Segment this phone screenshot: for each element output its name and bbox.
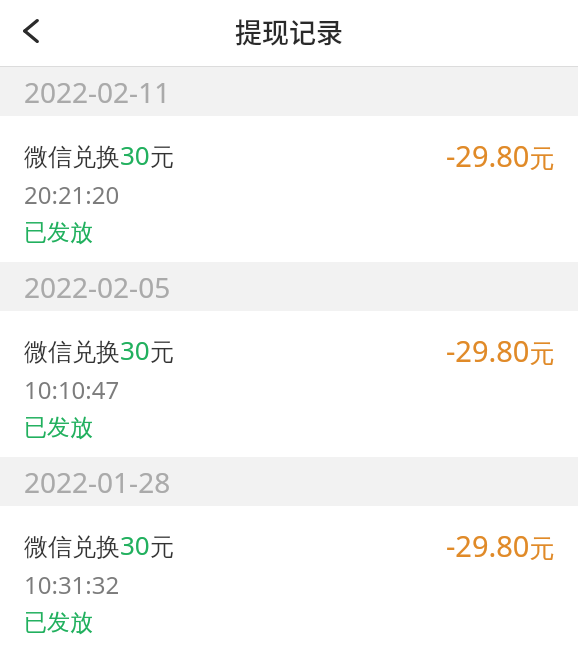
button[interactable]: 微信兑换30元 bbox=[0, 506, 578, 650]
staticText: -29.80元 bbox=[446, 526, 555, 565]
button[interactable]: Back bbox=[0, 1, 62, 61]
staticText: 2022-01-28 bbox=[24, 463, 171, 501]
staticText: 微信兑换30元 bbox=[24, 137, 174, 172]
staticText: 微信兑换30元 bbox=[24, 332, 174, 367]
staticText: -29.80元 bbox=[446, 331, 555, 370]
staticText: 已发放 bbox=[24, 413, 93, 442]
staticText: 微信兑换30元 bbox=[24, 527, 174, 562]
staticText: 10:31:32 bbox=[24, 568, 120, 601]
button[interactable]: 微信兑换30元 bbox=[0, 116, 578, 262]
staticText: 已发放 bbox=[24, 608, 93, 637]
button[interactable]: 微信兑换30元 bbox=[0, 311, 578, 457]
staticText: 2022-02-05 bbox=[24, 268, 171, 306]
staticText: 2022-02-11 bbox=[24, 73, 171, 111]
staticText: 10:10:47 bbox=[24, 373, 120, 406]
staticText: 提现记录 bbox=[0, 12, 578, 51]
staticText: -29.80元 bbox=[446, 136, 555, 175]
staticText: 20:21:20 bbox=[24, 178, 120, 211]
staticText: 已发放 bbox=[24, 218, 93, 247]
